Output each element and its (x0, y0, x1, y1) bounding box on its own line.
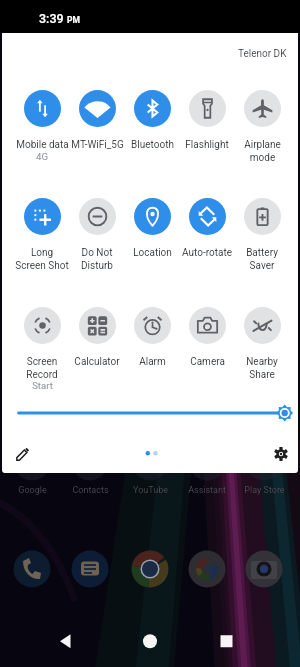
staticText: Bluetooth (131, 139, 174, 151)
button[interactable]: Screen Record (7, 305, 77, 391)
staticText: Location (133, 247, 172, 259)
button[interactable]: Settings (267, 440, 295, 468)
staticText: MT-WiFi_5G (71, 139, 124, 151)
button[interactable]: Camera (172, 305, 242, 368)
staticText: Play Store (244, 485, 285, 496)
button[interactable]: Alarm (117, 305, 187, 368)
staticText: Start (32, 380, 53, 391)
button[interactable]: Nearby Share (227, 305, 297, 380)
button[interactable]: Battery Saver (227, 196, 297, 271)
button[interactable]: Mobile data (7, 88, 77, 162)
staticText: Battery Saver (246, 247, 278, 271)
button[interactable]: Do Not Disturb (62, 196, 132, 271)
button[interactable]: Long Screen Shot (7, 196, 77, 271)
button[interactable]: Auto-rotate (172, 196, 242, 259)
staticText: Screen Record (26, 356, 58, 380)
staticText: 3:39 (39, 11, 64, 26)
button[interactable]: Flashlight (172, 88, 242, 151)
staticText: YouTube (133, 485, 168, 496)
staticText: Alarm (139, 356, 166, 368)
staticText: Contacts (72, 485, 109, 496)
staticText: Nearby Share (246, 356, 278, 380)
staticText: Flashlight (185, 139, 229, 151)
button[interactable]: Airplane mode (227, 88, 297, 163)
staticText: PM (67, 15, 80, 25)
staticText: Camera (190, 356, 225, 368)
button[interactable]: Bluetooth (117, 88, 187, 151)
staticText: Calculator (74, 356, 120, 368)
staticText: Google (18, 485, 47, 496)
staticText: Do Not Disturb (81, 247, 113, 271)
staticText: Airplane mode (244, 139, 281, 163)
button[interactable]: Calculator (62, 305, 132, 368)
staticText: Mobile data (16, 139, 69, 151)
staticText: 4G (36, 151, 48, 162)
staticText: Long Screen Shot (15, 247, 69, 271)
button[interactable]: MT-WiFi_5G (62, 88, 132, 151)
button[interactable]: Edit (9, 440, 37, 468)
button[interactable]: Location (117, 196, 187, 259)
staticText: Auto-rotate (182, 247, 232, 259)
staticText: Telenor DK (238, 48, 287, 60)
staticText: Assistant (188, 485, 226, 496)
